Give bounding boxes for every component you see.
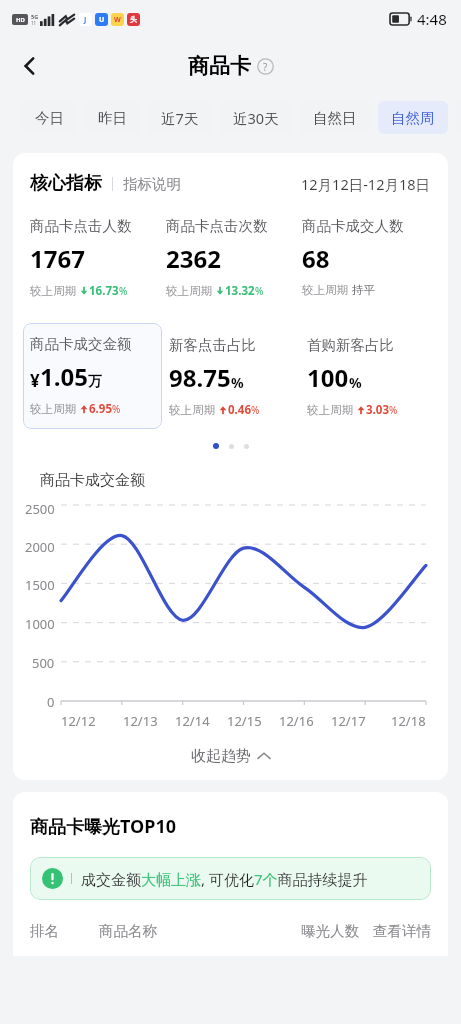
staticText: 较上周期 bbox=[166, 284, 212, 298]
staticText: 0 bbox=[47, 693, 55, 711]
staticText: % bbox=[389, 403, 398, 417]
staticText: ¥ bbox=[30, 369, 40, 392]
staticText: 12/13 bbox=[123, 712, 158, 730]
staticText: 较上周期 bbox=[307, 403, 353, 417]
staticText: 500 bbox=[32, 654, 55, 672]
staticText: 11 bbox=[31, 20, 37, 26]
button[interactable]: 商品卡点击人数 bbox=[30, 217, 166, 299]
button[interactable]: 商品卡成交人数 bbox=[302, 217, 438, 297]
staticText: 商品卡成交金额 bbox=[40, 471, 145, 490]
button[interactable]: 商品卡成交金额 bbox=[23, 323, 162, 429]
staticText: 商品卡 bbox=[188, 53, 251, 79]
staticText: 12/17 bbox=[331, 712, 366, 730]
staticText: 1000 bbox=[25, 615, 55, 633]
staticText: 收起趋势 bbox=[191, 747, 251, 766]
staticText: 指标说明 bbox=[123, 175, 181, 193]
button[interactable]: 指标说明 bbox=[123, 175, 181, 193]
staticText: U bbox=[99, 15, 105, 25]
staticText: 98.75 bbox=[169, 361, 231, 394]
staticText: 商品卡曝光TOP10 bbox=[30, 814, 177, 839]
staticText: J bbox=[84, 15, 87, 25]
staticText: % bbox=[231, 373, 244, 392]
button[interactable]: 商品卡点击次数 bbox=[166, 217, 302, 299]
staticText: 100 bbox=[307, 361, 349, 394]
staticText: 16.73 bbox=[89, 283, 119, 299]
staticText: 12/14 bbox=[175, 712, 210, 730]
staticText: 曝光人数 bbox=[301, 922, 359, 940]
staticText: % bbox=[255, 284, 264, 298]
staticText: 4:48 bbox=[417, 9, 447, 29]
staticText: 近7天 bbox=[161, 108, 199, 128]
staticText: 近30天 bbox=[233, 108, 279, 128]
staticText: 12/12 bbox=[61, 712, 96, 730]
staticText: 较上周期 bbox=[302, 283, 348, 297]
staticText: W bbox=[114, 15, 121, 25]
staticText: 查看详情 bbox=[373, 922, 431, 940]
staticText: 今日 bbox=[35, 109, 64, 127]
staticText: 自然日 bbox=[313, 109, 357, 127]
staticText: 5G bbox=[31, 13, 39, 20]
button[interactable]: Help bbox=[257, 58, 274, 75]
staticText: 昨日 bbox=[98, 109, 127, 127]
staticText: 成交金额大幅上涨, 可优化7个商品持续提升 bbox=[81, 869, 368, 889]
staticText: 68 bbox=[302, 242, 330, 275]
button[interactable]: 自然日 bbox=[300, 101, 370, 134]
staticText: 新客点击占比 bbox=[169, 336, 256, 354]
staticText: 自然周 bbox=[391, 109, 435, 127]
staticText: HD bbox=[16, 16, 25, 24]
staticText: 12/16 bbox=[279, 712, 314, 730]
staticText: 万 bbox=[88, 373, 102, 391]
staticText: 2500 bbox=[25, 500, 55, 518]
staticText: 0.46 bbox=[228, 402, 251, 418]
staticText: 较上周期 bbox=[30, 402, 76, 416]
staticText: 12月12日-12月18日 bbox=[301, 174, 431, 194]
staticText: ? bbox=[263, 60, 268, 74]
button[interactable]: 自然周 bbox=[378, 101, 448, 134]
staticText: % bbox=[119, 284, 128, 298]
staticText: 13.32 bbox=[225, 283, 255, 299]
staticText: 12/15 bbox=[227, 712, 262, 730]
staticText: 3.03 bbox=[366, 402, 389, 418]
staticText: % bbox=[112, 402, 121, 416]
staticText: 2000 bbox=[25, 538, 55, 556]
staticText: 12/18 bbox=[391, 712, 426, 730]
button[interactable]: 首购新客占比 bbox=[300, 323, 438, 418]
button[interactable]: Back bbox=[8, 44, 52, 88]
staticText: 商品名称 bbox=[99, 922, 157, 940]
staticText: 较上周期 bbox=[30, 284, 76, 298]
button[interactable]: 成交金额大幅上涨, 可优化7个商品持续提升 bbox=[30, 857, 431, 900]
button[interactable]: 今日 bbox=[22, 101, 77, 134]
staticText: 核心指标 bbox=[30, 172, 102, 195]
button[interactable]: 近7天 bbox=[148, 101, 212, 134]
staticText: 6.95 bbox=[89, 401, 112, 417]
button[interactable]: 近30天 bbox=[220, 101, 292, 134]
staticText: 排名 bbox=[30, 922, 59, 940]
staticText: 1500 bbox=[25, 576, 55, 594]
staticText: 持平 bbox=[352, 283, 375, 297]
staticText: % bbox=[251, 403, 260, 417]
staticText: 商品卡成交人数 bbox=[302, 217, 404, 235]
staticText: 1767 bbox=[30, 242, 85, 275]
button[interactable]: 查看详情 bbox=[373, 922, 431, 940]
staticText: 2362 bbox=[166, 242, 221, 275]
button[interactable]: 昨日 bbox=[85, 101, 140, 134]
staticText: 首购新客占比 bbox=[307, 336, 394, 354]
staticText: 头 bbox=[130, 15, 137, 24]
button[interactable]: 新客点击占比 bbox=[162, 323, 300, 418]
staticText: 商品卡点击次数 bbox=[166, 217, 268, 235]
staticText: 较上周期 bbox=[169, 403, 215, 417]
button[interactable]: 收起趋势 bbox=[13, 736, 448, 776]
staticText: 商品卡成交金额 bbox=[30, 335, 132, 353]
staticText: 1.05 bbox=[40, 360, 88, 393]
staticText: 商品卡点击人数 bbox=[30, 217, 132, 235]
staticText: % bbox=[349, 373, 362, 392]
